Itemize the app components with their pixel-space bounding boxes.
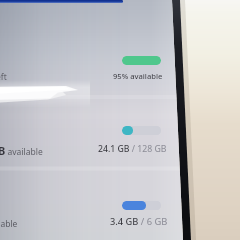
button[interactable]: eft: [0, 44, 240, 112]
staticText: 95% available: [113, 71, 163, 81]
staticText: B available: [0, 143, 43, 158]
staticText: 3.4 GB / 6 GB: [110, 215, 168, 228]
staticText: 24.1 GB / 128 GB: [98, 143, 167, 155]
staticText: ilable: [0, 218, 18, 230]
button[interactable]: B available: [0, 114, 240, 182]
button[interactable]: ilable: [0, 189, 240, 240]
staticText: eft: [0, 71, 7, 83]
